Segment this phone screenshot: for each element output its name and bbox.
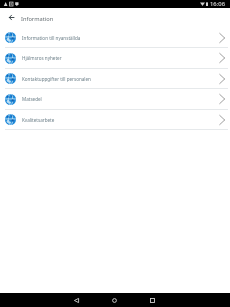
staticText: Hjälmsros nyheter [22, 55, 62, 61]
staticText: Information [21, 15, 54, 23]
button[interactable]: Matsedel [0, 89, 230, 109]
staticText: Kvalitetsarbete [22, 117, 55, 123]
staticText: Matsedel [22, 96, 42, 102]
button[interactable]: Kvalitetsarbete [0, 110, 230, 129]
staticText: Kontaktuppgifter till personalen [22, 76, 91, 82]
button[interactable]: Kontaktuppgifter till personalen [0, 69, 230, 88]
staticText: 16:06 [210, 0, 226, 8]
button[interactable]: Back [0, 8, 21, 28]
staticText: Information till nyanställda [22, 35, 81, 41]
button[interactable]: Information till nyanställda [0, 28, 230, 47]
button[interactable]: Hjälmsros nyheter [0, 48, 230, 68]
button[interactable]: Back [67, 293, 86, 307]
button[interactable]: Recent apps [143, 293, 162, 307]
button[interactable]: Home [105, 293, 124, 307]
